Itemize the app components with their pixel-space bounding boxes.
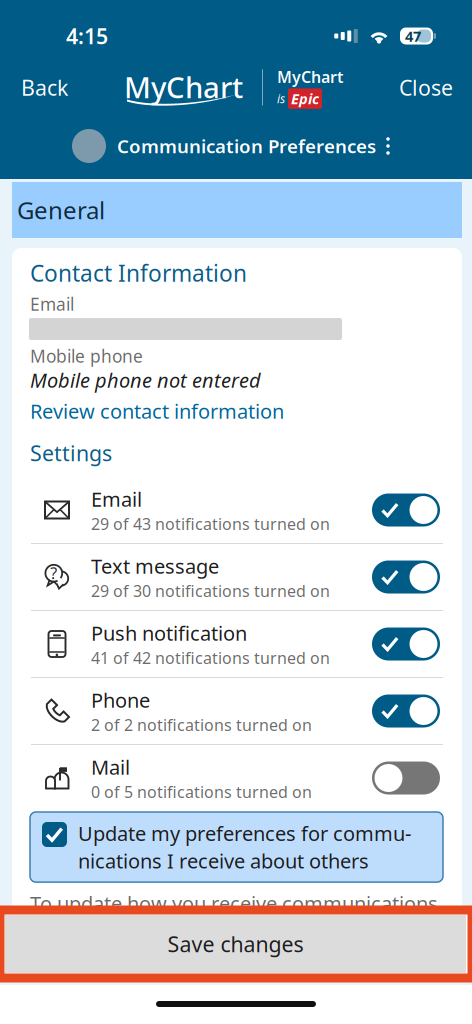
staticText: Update my preferences for commu-: [78, 820, 411, 847]
staticText: 0 of 5 notifications turned on: [91, 781, 312, 802]
staticText: ?: [50, 562, 57, 584]
staticText: Settings: [30, 439, 112, 467]
button[interactable]: Back: [0, 65, 82, 109]
staticText: nications I receive about others: [78, 848, 369, 874]
button[interactable]: Update my preferences for commu-: [30, 812, 443, 882]
staticText: Back: [21, 73, 68, 102]
staticText: 4:15: [66, 22, 108, 50]
staticText: is: [277, 91, 285, 107]
staticText: Close: [399, 73, 453, 102]
staticText: 2 of 2 notifications turned on: [91, 714, 312, 735]
button[interactable]: Review contact information: [12, 397, 302, 425]
staticText: 29 of 43 notifications turned on: [91, 513, 330, 534]
button[interactable]: Save changes: [0, 910, 472, 978]
staticText: Contact Information: [30, 258, 247, 288]
button[interactable]: Mail: [12, 745, 462, 811]
staticText: General: [17, 194, 105, 226]
staticText: To update how you receive communications…: [30, 890, 462, 916]
staticText: Mobile phone: [30, 344, 143, 367]
staticText: 41 of 42 notifications turned on: [91, 647, 330, 668]
staticText: Text message: [91, 553, 219, 579]
staticText: Email: [30, 292, 74, 315]
staticText: Mobile phone not entered: [30, 367, 261, 393]
staticText: MyChart: [277, 66, 343, 87]
staticText: MyChart: [124, 67, 243, 106]
staticText: Email: [91, 486, 142, 512]
staticText: Mail: [91, 754, 130, 780]
button[interactable]: Push notification: [12, 611, 462, 677]
staticText: 29 of 30 notifications turned on: [91, 580, 330, 601]
staticText: Push notification: [91, 620, 247, 646]
button[interactable]: Close: [385, 65, 472, 109]
button[interactable]: Turn off: [372, 493, 440, 526]
staticText: 47: [405, 26, 421, 46]
staticText: Phone: [91, 687, 150, 713]
button[interactable]: Turn off: [372, 627, 440, 660]
button[interactable]: More options: [376, 126, 400, 166]
button[interactable]: Turn on: [372, 761, 440, 794]
staticText: Save changes: [167, 930, 303, 958]
button[interactable]: Turn off: [372, 694, 440, 727]
button[interactable]: ?: [12, 544, 462, 610]
button[interactable]: Email: [12, 477, 462, 543]
button[interactable]: Phone: [12, 678, 462, 744]
staticText: Epic: [291, 89, 319, 108]
staticText: Review contact information: [30, 398, 284, 424]
staticText: Communication Preferences: [117, 134, 376, 158]
button[interactable]: Turn off: [372, 560, 440, 593]
